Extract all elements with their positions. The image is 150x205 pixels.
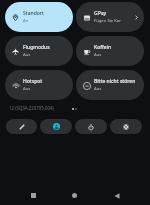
- staticText: Flugmodus: [23, 44, 50, 51]
- button[interactable]: Nutzer wechseln: [40, 119, 72, 134]
- staticText: Standort: [23, 10, 44, 17]
- button[interactable]: Ein/Aus: [75, 119, 107, 134]
- button[interactable]: Standort: [5, 2, 73, 32]
- staticText: Fügen Sie Kar: [94, 18, 121, 24]
- staticText: GPay: [94, 10, 107, 17]
- staticText: 12 (SQ3A.220705.004): [9, 105, 54, 111]
- button[interactable]: Recents: [26, 188, 41, 203]
- staticText: Aus: [23, 86, 31, 92]
- staticText: Bitte nicht stören: [94, 78, 136, 85]
- button[interactable]: Koffein: [76, 36, 144, 66]
- staticText: An: [23, 18, 29, 24]
- staticText: Aus: [94, 86, 102, 92]
- button[interactable]: GPay: [76, 2, 144, 32]
- button[interactable]: Bearbeiten: [6, 119, 37, 134]
- button[interactable]: Bitte nicht stören: [76, 70, 144, 100]
- staticText: Aus: [94, 52, 102, 58]
- staticText: Koffein: [94, 44, 112, 51]
- button[interactable]: Back: [109, 188, 124, 203]
- staticText: Hotspot: [23, 78, 43, 85]
- button[interactable]: Home: [67, 188, 82, 203]
- staticText: Aus: [23, 52, 31, 58]
- button[interactable]: Flugmodus: [5, 36, 73, 66]
- button[interactable]: Hotspot: [5, 70, 73, 100]
- button[interactable]: Einstellungen: [110, 119, 142, 134]
